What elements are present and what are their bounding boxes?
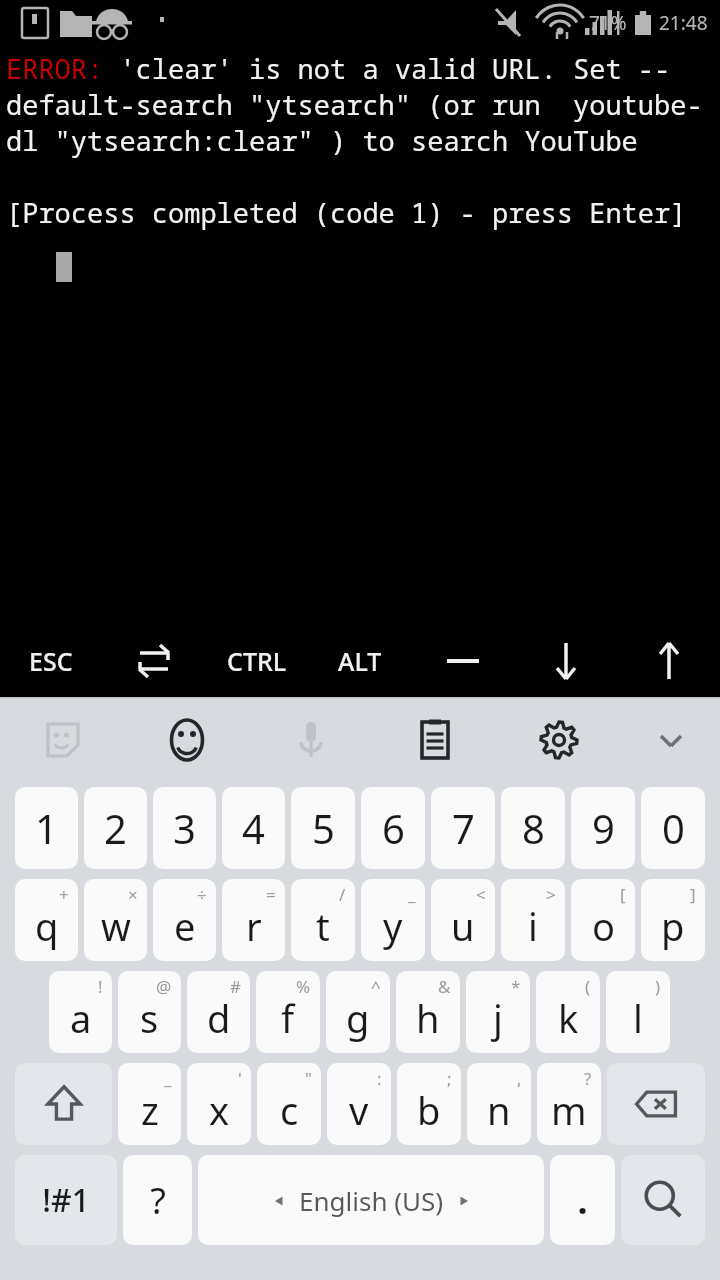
button[interactable]: @: [118, 971, 181, 1053]
button[interactable]: 4: [222, 787, 285, 869]
button[interactable]: <: [431, 879, 495, 961]
staticText: ;: [447, 1067, 452, 1090]
staticText: i: [528, 900, 538, 952]
staticText: ': [238, 1067, 242, 1090]
button[interactable]: CTRL: [205, 625, 308, 697]
staticText: 6: [382, 801, 405, 855]
button[interactable]: ;: [397, 1063, 461, 1145]
staticText: n: [487, 1084, 511, 1136]
button[interactable]: _: [118, 1063, 181, 1145]
button[interactable]: =: [222, 879, 285, 961]
button[interactable]: !#1: [15, 1155, 117, 1245]
staticText: +: [59, 883, 69, 906]
staticText: #: [230, 975, 241, 998]
staticText: %: [296, 975, 311, 998]
staticText: &: [438, 975, 451, 998]
button[interactable]: Shift: [15, 1063, 112, 1145]
staticText: v: [349, 1084, 369, 1136]
button[interactable]: ×: [84, 879, 147, 961]
button[interactable]: ALT: [308, 625, 411, 697]
staticText: ]: [690, 883, 696, 906]
staticText: o: [592, 900, 615, 952]
button[interactable]: ,: [467, 1063, 531, 1145]
button[interactable]: ^: [326, 971, 390, 1053]
button[interactable]: Emoji: [125, 698, 249, 782]
button[interactable]: /: [291, 879, 355, 961]
staticText: d: [207, 992, 231, 1044]
button[interactable]: ': [187, 1063, 251, 1145]
button[interactable]: 1: [15, 787, 78, 869]
button[interactable]: ": [257, 1063, 321, 1145]
button[interactable]: 6: [361, 787, 425, 869]
staticText: English (US): [299, 1183, 444, 1218]
staticText: 7: [452, 801, 475, 855]
staticText: h: [416, 992, 440, 1044]
button[interactable]: .: [550, 1155, 615, 1245]
staticText: 2: [104, 801, 127, 855]
button[interactable]: *: [466, 971, 530, 1053]
button[interactable]: ): [606, 971, 670, 1053]
button[interactable]: >: [501, 879, 565, 961]
button[interactable]: 0: [641, 787, 705, 869]
button[interactable]: Down arrow: [514, 625, 617, 697]
staticText: _: [408, 883, 416, 906]
button[interactable]: ESC: [0, 625, 102, 697]
button[interactable]: _: [361, 879, 425, 961]
staticText: p: [661, 900, 685, 952]
staticText: ×: [128, 883, 138, 906]
button[interactable]: #: [187, 971, 250, 1053]
button[interactable]: &: [396, 971, 460, 1053]
button[interactable]: 9: [571, 787, 635, 869]
button[interactable]: 8: [501, 787, 565, 869]
button[interactable]: (: [536, 971, 600, 1053]
staticText: y: [383, 900, 403, 952]
staticText: ERROR: 'clear' is not a valid URL. Set -…: [6, 50, 720, 231]
staticText: :: [377, 1067, 382, 1090]
button[interactable]: English (US): [198, 1155, 544, 1245]
staticText: 21:48: [659, 10, 708, 36]
staticText: u: [451, 900, 475, 952]
button[interactable]: Settings: [497, 698, 621, 782]
staticText: ÷: [197, 883, 207, 906]
button[interactable]: Tab: [102, 625, 205, 697]
button[interactable]: ]: [641, 879, 705, 961]
staticText: b: [417, 1084, 441, 1136]
staticText: (: [585, 975, 591, 998]
button[interactable]: %: [256, 971, 320, 1053]
staticText: @: [156, 975, 172, 998]
button[interactable]: 2: [84, 787, 147, 869]
staticText: <: [476, 883, 486, 906]
staticText: !#1: [42, 1178, 90, 1222]
staticText: 5: [312, 801, 335, 855]
button[interactable]: 3: [153, 787, 216, 869]
staticText: j: [493, 992, 503, 1044]
button[interactable]: 7: [431, 787, 495, 869]
button[interactable]: Minus: [411, 625, 514, 697]
staticText: z: [141, 1084, 159, 1136]
staticText: >: [546, 883, 556, 906]
button[interactable]: Voice input: [249, 698, 373, 782]
button[interactable]: Hide keyboard: [621, 698, 720, 782]
button[interactable]: Clipboard: [373, 698, 497, 782]
button[interactable]: :: [327, 1063, 391, 1145]
staticText: /: [339, 883, 346, 906]
staticText: w: [101, 900, 131, 952]
button[interactable]: ?: [537, 1063, 601, 1145]
button[interactable]: ?: [123, 1155, 192, 1245]
button[interactable]: +: [15, 879, 78, 961]
button[interactable]: Stickers: [0, 698, 125, 782]
staticText: [: [620, 883, 626, 906]
button[interactable]: !: [49, 971, 112, 1053]
button[interactable]: [: [571, 879, 635, 961]
staticText: l: [633, 992, 643, 1044]
staticText: ": [305, 1067, 312, 1090]
button[interactable]: 5: [291, 787, 355, 869]
button[interactable]: Up arrow: [617, 625, 720, 697]
staticText: x: [209, 1084, 230, 1136]
button[interactable]: ÷: [153, 879, 216, 961]
staticText: ^: [371, 975, 381, 998]
staticText: 0: [662, 801, 685, 855]
button[interactable]: Search: [621, 1155, 705, 1245]
staticText: t: [316, 900, 330, 952]
button[interactable]: Backspace: [607, 1063, 705, 1145]
